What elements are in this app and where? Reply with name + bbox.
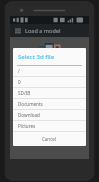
staticText: Documents (18, 101, 43, 107)
button[interactable]: Pictures (13, 121, 86, 132)
staticText: Select 3d file (18, 53, 55, 61)
staticText: / (18, 68, 20, 74)
staticText: SD/IB (18, 90, 31, 96)
staticText: SELECT A MODEL TO LOAD (25, 97, 74, 106)
button[interactable]: / (13, 66, 86, 77)
button[interactable]: SD/IB (13, 88, 86, 99)
staticText: Tap the button to load a model (21, 89, 79, 94)
button[interactable]: 0 (13, 77, 86, 88)
staticText: Load a model (25, 27, 61, 34)
button[interactable]: Download (13, 110, 86, 121)
staticText: 0 (18, 79, 21, 85)
staticText: Cancel (42, 136, 57, 142)
staticText: Download (18, 112, 40, 118)
button[interactable]: Cancel (37, 134, 62, 144)
button[interactable]: SELECT A MODEL TO LOAD (25, 97, 74, 106)
staticText: Pictures (18, 123, 36, 129)
button[interactable]: Open navigation drawer (13, 26, 23, 36)
button[interactable]: Documents (13, 99, 86, 110)
